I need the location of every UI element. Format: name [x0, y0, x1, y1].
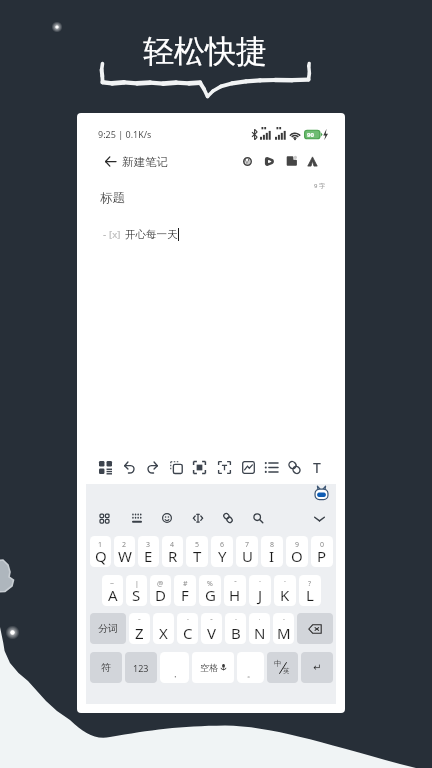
staticText: S: [132, 585, 141, 605]
staticText: R: [168, 546, 178, 566]
button[interactable]: 。: [237, 652, 264, 683]
button[interactable]: Keyboard layout: [127, 508, 147, 528]
staticText: 符: [101, 661, 111, 674]
staticText: ˙: [259, 617, 261, 627]
button[interactable]: ˙: [249, 613, 270, 644]
button[interactable]: Voice input: [188, 508, 208, 528]
staticText: Y: [218, 546, 227, 566]
staticText: 4: [170, 540, 175, 550]
button[interactable]: ?: [299, 575, 321, 606]
button[interactable]: ˋ: [225, 613, 246, 644]
button[interactable]: @: [150, 575, 171, 606]
button[interactable]: 123: [125, 652, 157, 683]
button[interactable]: More: [301, 150, 323, 172]
staticText: 3: [146, 540, 151, 550]
button[interactable]: Select all: [188, 456, 210, 478]
button[interactable]: 5: [186, 536, 208, 567]
button[interactable]: Link: [283, 456, 305, 478]
staticText: I: [269, 546, 275, 566]
button[interactable]: Folder: [281, 150, 303, 172]
button[interactable]: ，: [160, 652, 189, 683]
staticText: ˊ: [284, 579, 286, 589]
staticText: 8: [270, 540, 275, 550]
staticText: ˇ: [210, 617, 213, 627]
button[interactable]: Play: [258, 150, 280, 172]
button[interactable]: ↵: [301, 652, 333, 683]
staticText: 6: [220, 540, 225, 550]
button[interactable]: List: [260, 456, 282, 478]
staticText: 1: [98, 540, 103, 550]
staticText: |: [135, 579, 139, 589]
button[interactable]: |: [126, 575, 147, 606]
staticText: 9 字: [314, 182, 325, 190]
button[interactable]: Baidu IME: [313, 485, 330, 502]
button[interactable]: 6: [211, 536, 233, 567]
staticText: @: [157, 579, 164, 589]
staticText: 。: [247, 669, 255, 679]
button[interactable]: Backspace: [297, 613, 333, 644]
staticText: ~: [110, 579, 115, 589]
button[interactable]: Markdown: [236, 150, 258, 172]
button[interactable]: Undo: [118, 456, 140, 478]
button[interactable]: X: [153, 613, 174, 644]
staticText: %: [207, 579, 213, 589]
button[interactable]: ˊ: [274, 575, 296, 606]
staticText: 90: [307, 131, 314, 139]
button[interactable]: %: [199, 575, 221, 606]
button[interactable]: Text box: [213, 456, 235, 478]
button[interactable]: Copy: [165, 456, 187, 478]
button[interactable]: Search: [248, 508, 268, 528]
button[interactable]: 3: [138, 536, 159, 567]
button[interactable]: Switch language: [267, 652, 298, 683]
button[interactable]: 分词: [90, 613, 126, 644]
button[interactable]: 8: [261, 536, 283, 567]
button[interactable]: Emoji: [157, 508, 177, 528]
button[interactable]: 7: [236, 536, 258, 567]
staticText: ˉ: [138, 617, 141, 627]
button[interactable]: 9: [286, 536, 308, 567]
button[interactable]: 1: [90, 536, 111, 567]
button[interactable]: 符: [90, 652, 122, 683]
staticText: 5: [195, 540, 200, 550]
staticText: 开心每一天: [125, 228, 178, 241]
staticText: Z: [135, 623, 144, 643]
staticText: C: [183, 623, 193, 643]
button[interactable]: #: [174, 575, 196, 606]
button[interactable]: Image: [237, 456, 259, 478]
staticText: K: [280, 585, 290, 605]
staticText: -: [103, 227, 109, 241]
button[interactable]: 4: [162, 536, 183, 567]
button[interactable]: Back: [102, 153, 119, 170]
button[interactable]: Redo: [141, 456, 163, 478]
button[interactable]: 0: [311, 536, 333, 567]
button[interactable]: ˉ: [129, 613, 150, 644]
staticText: W: [118, 546, 132, 566]
staticText: 0: [320, 540, 325, 550]
button[interactable]: ˇ: [201, 613, 222, 644]
staticText: ˋ: [235, 617, 237, 627]
staticText: B: [231, 623, 241, 643]
staticText: 123: [133, 662, 149, 674]
staticText: E: [144, 546, 153, 566]
staticText: ˊ: [187, 617, 189, 627]
staticText: 轻松快捷: [143, 32, 267, 71]
button[interactable]: 2: [114, 536, 135, 567]
button[interactable]: `: [249, 575, 271, 606]
button[interactable]: Apps: [94, 508, 114, 528]
button[interactable]: ˇ: [224, 575, 246, 606]
button[interactable]: Blocks: [94, 456, 116, 478]
staticText: ˇ: [234, 579, 237, 589]
staticText: T: [313, 458, 321, 477]
button[interactable]: Hide keyboard: [309, 508, 329, 528]
button[interactable]: ˊ: [177, 613, 198, 644]
staticText: ˊ: [283, 617, 285, 627]
staticText: G: [205, 585, 216, 605]
staticText: 空格: [200, 662, 218, 673]
button[interactable]: ~: [102, 575, 123, 606]
button[interactable]: ˊ: [273, 613, 294, 644]
button[interactable]: Link: [218, 508, 238, 528]
staticText: ?: [308, 579, 312, 589]
staticText: V: [207, 623, 217, 643]
button[interactable]: Font: [306, 456, 328, 478]
button[interactable]: 空格: [192, 652, 234, 683]
